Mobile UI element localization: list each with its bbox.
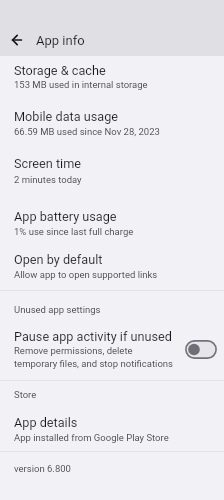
staticText: App installed from Google Play Store: [14, 432, 169, 443]
staticText: Remove permissions, delete: [14, 345, 133, 356]
staticText: 1% use since last full charge: [14, 226, 134, 237]
staticText: Unused app settings: [14, 304, 101, 315]
staticText: Storage & cache: [14, 63, 106, 78]
button[interactable]: [0, 322, 224, 378]
staticText: temporary files, and stop notifications: [14, 358, 173, 369]
button[interactable]: [5, 28, 29, 52]
button[interactable]: [0, 245, 224, 283]
staticText: 2 minutes today: [14, 174, 82, 185]
staticText: App battery usage: [14, 209, 117, 224]
staticText: Pause app activity if unused: [14, 329, 172, 344]
staticText: Screen time: [14, 156, 82, 171]
staticText: Allow app to open supported links: [14, 269, 158, 280]
staticText: 153 MB used in internal storage: [14, 79, 148, 90]
button[interactable]: [0, 56, 224, 102]
staticText: App info: [36, 33, 85, 48]
staticText: App details: [14, 415, 78, 430]
staticText: Mobile data usage: [14, 109, 119, 124]
button[interactable]: [0, 150, 224, 202]
staticText: 66.59 MB used since Nov 28, 2023: [14, 126, 160, 137]
button[interactable]: [0, 406, 224, 446]
button[interactable]: [0, 202, 224, 245]
button[interactable]: [0, 102, 224, 150]
staticText: Store: [14, 389, 37, 400]
staticText: Open by default: [14, 252, 103, 267]
staticText: version 6.800: [14, 463, 71, 474]
